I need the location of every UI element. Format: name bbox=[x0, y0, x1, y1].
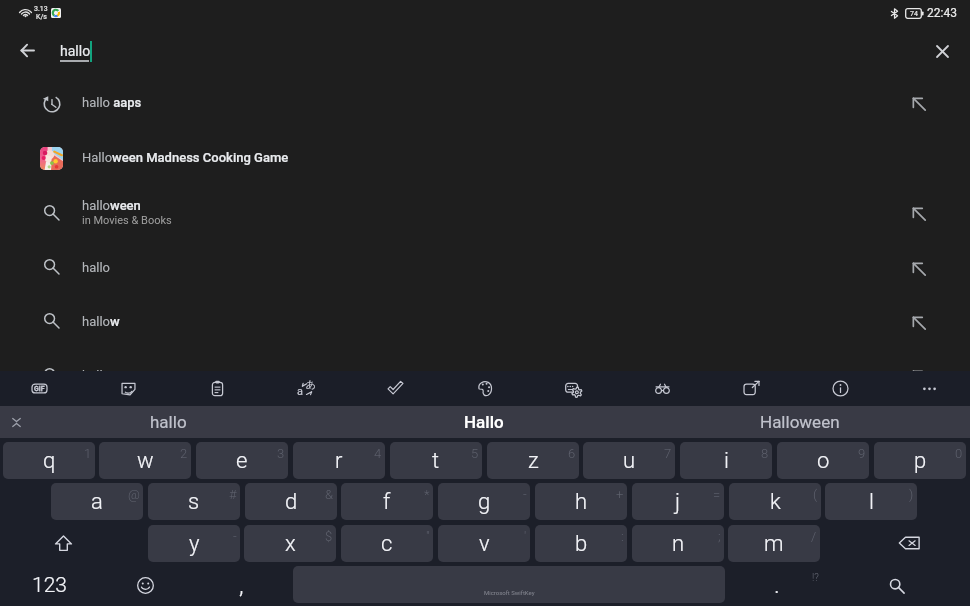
button[interactable]: q bbox=[3, 442, 95, 479]
staticText: # bbox=[229, 487, 237, 502]
button[interactable]: Hallo bbox=[326, 406, 642, 438]
staticText: s bbox=[188, 489, 200, 515]
button[interactable]: h bbox=[535, 483, 627, 520]
staticText: 4 bbox=[374, 446, 382, 461]
staticText: 9 bbox=[858, 446, 866, 461]
button[interactable]: Resize bbox=[707, 371, 796, 406]
staticText: r bbox=[335, 448, 343, 474]
staticText: 6 bbox=[568, 446, 576, 461]
button[interactable]: l bbox=[825, 483, 917, 520]
button[interactable]: Search bbox=[876, 566, 916, 604]
button[interactable]: , bbox=[222, 566, 260, 604]
staticText: あ bbox=[306, 378, 317, 391]
staticText: Halloween Madness Cooking Game bbox=[82, 150, 289, 165]
button[interactable]: z bbox=[487, 442, 579, 479]
staticText: p bbox=[914, 448, 927, 474]
staticText: , bbox=[239, 571, 244, 599]
button[interactable]: k bbox=[729, 483, 821, 520]
staticText: ) bbox=[909, 487, 914, 502]
button[interactable]: g bbox=[438, 483, 530, 520]
button[interactable]: e bbox=[196, 442, 288, 479]
button[interactable]: GIF bbox=[0, 371, 84, 406]
button[interactable]: p bbox=[874, 442, 966, 479]
staticText: * bbox=[424, 487, 430, 502]
button[interactable]: Space bbox=[293, 566, 725, 603]
staticText: q bbox=[43, 448, 56, 474]
button[interactable]: y bbox=[148, 525, 240, 562]
button[interactable]: Clipboard bbox=[173, 371, 262, 406]
button[interactable]: Keyboard settings bbox=[529, 371, 618, 406]
staticText: a bbox=[297, 385, 303, 398]
button[interactable]: Incognito bbox=[618, 371, 707, 406]
staticText: Halloween bbox=[760, 412, 840, 432]
staticText: y bbox=[189, 531, 200, 557]
staticText: 7 bbox=[664, 446, 672, 461]
staticText: hallo bbox=[150, 412, 187, 432]
button[interactable]: Emoji bbox=[126, 566, 164, 604]
staticText: d bbox=[285, 489, 298, 515]
button[interactable]: Stickers bbox=[84, 371, 173, 406]
staticText: h bbox=[575, 489, 588, 515]
staticText: $ bbox=[325, 529, 333, 544]
button[interactable]: Insert suggestion bbox=[900, 250, 937, 287]
button[interactable]: Back bbox=[11, 34, 44, 67]
button[interactable]: o bbox=[777, 442, 869, 479]
button[interactable]: m bbox=[728, 525, 820, 562]
staticText: v bbox=[479, 531, 490, 557]
button[interactable]: Editor bbox=[351, 371, 440, 406]
staticText: b bbox=[575, 531, 588, 557]
button[interactable]: b bbox=[535, 525, 627, 562]
button[interactable]: n bbox=[632, 525, 724, 562]
button[interactable]: s bbox=[148, 483, 240, 520]
staticText: - bbox=[233, 529, 237, 544]
staticText: 8 bbox=[761, 446, 769, 461]
button[interactable]: Themes bbox=[440, 371, 529, 406]
staticText: 74 bbox=[910, 10, 918, 18]
button[interactable]: t bbox=[390, 442, 482, 479]
button[interactable]: Halloween bbox=[642, 406, 958, 438]
button[interactable]: Insert suggestion bbox=[900, 304, 937, 341]
staticText: + bbox=[616, 487, 624, 502]
staticText: @ bbox=[128, 487, 140, 502]
button[interactable]: f bbox=[341, 483, 433, 520]
staticText: ; bbox=[718, 529, 721, 544]
button[interactable]: j bbox=[632, 483, 724, 520]
staticText: w bbox=[137, 448, 154, 474]
button[interactable]: a bbox=[51, 483, 143, 520]
button[interactable]: Shift bbox=[35, 525, 92, 561]
button[interactable]: Insert suggestion bbox=[900, 195, 937, 232]
staticText: 5 bbox=[471, 446, 479, 461]
staticText: in Movies & Books bbox=[82, 214, 172, 227]
staticText: : bbox=[621, 529, 624, 544]
button[interactable]: Insert suggestion bbox=[900, 85, 937, 122]
staticText: Microsoft SwiftKey bbox=[484, 589, 535, 596]
staticText: t bbox=[432, 448, 440, 474]
button[interactable]: v bbox=[438, 525, 530, 562]
button[interactable]: Backspace bbox=[880, 525, 937, 561]
button[interactable]: x bbox=[244, 525, 336, 562]
button[interactable]: u bbox=[583, 442, 675, 479]
staticText: o bbox=[817, 448, 830, 474]
button[interactable]: . bbox=[758, 566, 796, 604]
button[interactable] bbox=[0, 186, 970, 240]
button[interactable]: More bbox=[885, 371, 970, 406]
button[interactable] bbox=[0, 131, 970, 185]
button[interactable]: 123 bbox=[20, 566, 78, 604]
button[interactable]: d bbox=[245, 483, 337, 520]
button[interactable]: Expand suggestions bbox=[4, 410, 28, 434]
button[interactable]: hallo bbox=[11, 406, 326, 438]
button[interactable]: c bbox=[341, 525, 433, 562]
button[interactable]: w bbox=[99, 442, 191, 479]
staticText: u bbox=[623, 448, 636, 474]
button[interactable]: Clear search bbox=[926, 35, 959, 68]
button[interactable]: Translate bbox=[262, 371, 351, 406]
staticText: f bbox=[383, 489, 391, 515]
button[interactable]: i bbox=[680, 442, 772, 479]
staticText: 0 bbox=[955, 446, 963, 461]
staticText: halloween bbox=[82, 198, 141, 213]
button[interactable] bbox=[0, 76, 970, 130]
button[interactable]: r bbox=[293, 442, 385, 479]
button[interactable] bbox=[0, 241, 970, 295]
button[interactable]: Info bbox=[796, 371, 885, 406]
button[interactable] bbox=[0, 295, 970, 349]
